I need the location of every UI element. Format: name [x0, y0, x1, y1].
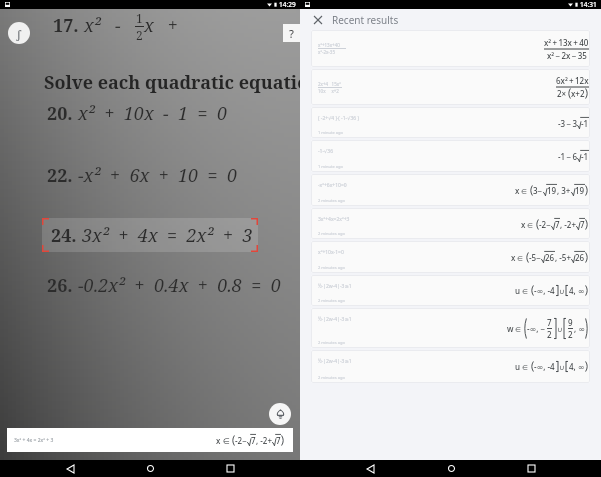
staticText: x² + 13x + 40	[544, 37, 589, 48]
staticText: −0.2x² + 0.4x + 0.8 = 0	[78, 273, 281, 298]
staticText: 2 minutes ago	[318, 265, 345, 270]
staticText: x	[515, 185, 520, 196]
staticText: ½·|2w-4|-3≥1	[318, 283, 352, 290]
staticText: x²+13x+40	[318, 42, 340, 48]
staticText: x² −	[84, 13, 135, 38]
staticText: ∪	[557, 325, 563, 333]
staticText: Recent results	[332, 13, 399, 27]
staticText: 2 minutes ago	[318, 375, 345, 380]
button[interactable]: -1-√36	[311, 140, 590, 172]
staticText: 26.	[47, 273, 73, 298]
staticText: x +	[144, 13, 178, 38]
button[interactable]: x²+13x+40	[311, 30, 590, 67]
staticText: -1	[581, 151, 589, 162]
other: Close	[311, 13, 325, 27]
staticText: , -5+	[555, 252, 571, 263]
staticText: ∪	[559, 287, 565, 295]
staticText: 3x²+4x=2x²+3	[318, 216, 350, 223]
staticText: 2	[568, 329, 573, 340]
staticText: 6x² + 12x	[556, 75, 589, 86]
staticText: 2 minutes ago	[318, 198, 345, 203]
staticText: ∈	[520, 187, 529, 196]
button[interactable]: ½·|2w-4|-3≥1	[311, 350, 590, 383]
button[interactable]: -x²+6x+10=0	[311, 174, 590, 206]
staticText: x+2	[571, 88, 585, 99]
staticText: 7	[251, 435, 256, 446]
staticText: 19	[547, 185, 557, 196]
staticText: 2×	[557, 88, 567, 99]
staticText: x²-2x-35	[318, 49, 335, 55]
staticText: ∈	[521, 363, 530, 372]
button[interactable]: Home	[140, 460, 160, 477]
staticText: 3−	[533, 185, 543, 196]
button[interactable]: ½·|2w-4|-3≥1	[311, 308, 590, 348]
staticText: ∪	[559, 363, 565, 371]
staticText: -2−	[235, 435, 247, 446]
staticText: , 3+	[557, 185, 571, 196]
staticText: 1 minute ago	[318, 130, 343, 135]
button[interactable]: Home	[441, 460, 461, 477]
staticText: u	[515, 361, 521, 372]
staticText: x² − 2x − 35	[547, 50, 587, 61]
staticText: ∈	[521, 287, 530, 296]
staticText: 2 minutes ago	[318, 340, 345, 345]
staticText: Solve each quadratic equation	[44, 70, 321, 95]
staticText: , ∞	[574, 323, 585, 334]
staticText: 26	[575, 252, 585, 263]
button[interactable]: Scan	[269, 403, 291, 425]
staticText: ½·|2w-4|-3≥1	[318, 316, 352, 323]
staticText: -3 − 3	[558, 118, 577, 129]
staticText: 24.	[51, 223, 77, 248]
button[interactable]: ½·|2w-4|-3≥1	[311, 275, 590, 306]
staticText: , -2+	[560, 219, 576, 230]
staticText: 7	[580, 219, 585, 230]
staticText: ?	[289, 26, 294, 41]
staticText: 2	[547, 329, 552, 340]
staticText: 2 minutes ago	[318, 231, 345, 236]
button[interactable]: 3x² + 4x = 2x² + 3	[7, 428, 293, 452]
button[interactable]: 3x²+4x=2x²+3	[311, 208, 590, 239]
staticText: 14:29	[279, 0, 296, 9]
staticText: 2	[136, 27, 143, 43]
staticText: , -2+	[256, 435, 272, 446]
staticText: -∞, -4	[534, 285, 555, 296]
staticText: 4, ∞	[569, 285, 585, 296]
staticText: ∈	[221, 435, 231, 446]
staticText: −x² + 6x + 10 = 0	[78, 163, 238, 188]
button[interactable]: Recents	[521, 460, 541, 477]
button[interactable]: Recents	[220, 460, 240, 477]
staticText: 20.	[47, 101, 73, 126]
staticText: ʃ	[17, 26, 21, 41]
staticText: 22.	[47, 163, 73, 188]
staticText: 10x x+2	[318, 88, 339, 94]
staticText: 9	[568, 317, 573, 328]
button[interactable]: Close	[300, 9, 601, 30]
staticText: -5−	[529, 252, 541, 263]
staticText: 7	[547, 317, 552, 328]
staticText: 2x+4 15x²	[318, 81, 341, 87]
staticText: x	[521, 219, 526, 230]
button[interactable]: Back	[60, 460, 80, 477]
staticText: -1-√36	[318, 148, 333, 155]
button[interactable]: ( -2+√4 )·( -1-√36 )	[311, 107, 590, 138]
staticText: -1 − 6	[558, 151, 577, 162]
button[interactable]: Math keyboard	[8, 22, 30, 44]
staticText: ∈	[526, 221, 535, 230]
button[interactable]: 2x+4 15x²	[311, 69, 590, 105]
button[interactable]: x²+10x-1=0	[311, 241, 590, 273]
staticText: 17.	[53, 13, 79, 38]
staticText: 4, ∞	[569, 361, 585, 372]
staticText: 14:31	[580, 0, 597, 9]
staticText: 3x² + 4x = 2x² + 3	[14, 437, 54, 444]
staticText: 2 minutes ago	[318, 298, 345, 303]
staticText: 7	[555, 219, 560, 230]
button[interactable]: Back	[360, 460, 380, 477]
staticText: 19	[575, 185, 585, 196]
staticText: -2−	[539, 219, 551, 230]
button[interactable]: Help	[283, 24, 300, 42]
staticText: u	[515, 285, 521, 296]
staticText: 3x² + 4x = 2x² + 3	[82, 223, 253, 248]
staticText: w	[507, 323, 514, 334]
staticText: x	[216, 435, 221, 446]
staticText: -x²+6x+10=0	[318, 182, 347, 189]
